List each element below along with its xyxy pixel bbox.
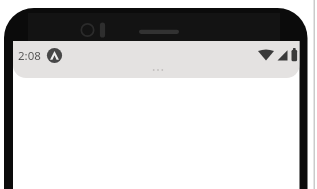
button[interactable]: Phone screen preview xyxy=(0,0,317,189)
